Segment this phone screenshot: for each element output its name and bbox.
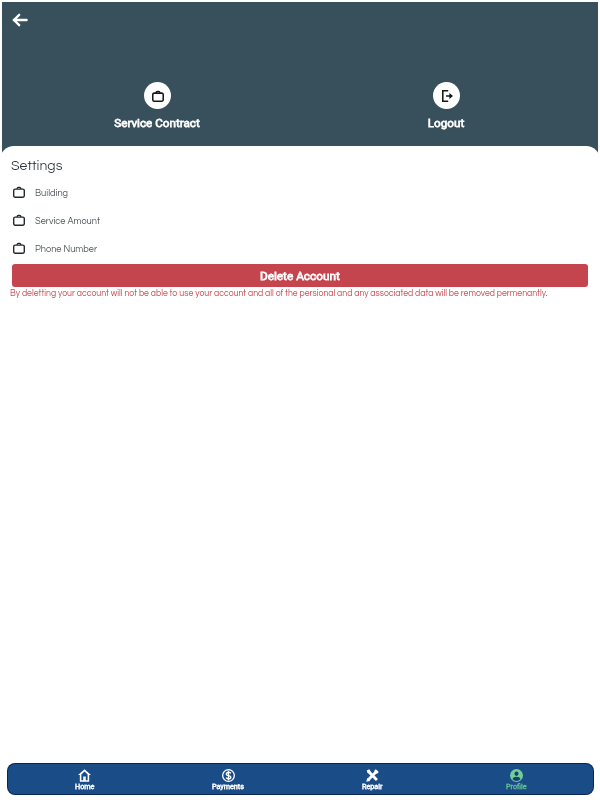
button[interactable]: Logout xyxy=(386,82,506,130)
button[interactable]: Profile xyxy=(444,764,588,794)
staticText: Building xyxy=(35,188,69,197)
staticText: Logout xyxy=(386,116,506,130)
button[interactable]: Delete Account xyxy=(12,264,588,287)
button[interactable]: Payments xyxy=(156,764,300,794)
staticText: Home xyxy=(75,782,95,790)
staticText: By deletting your account will not be ab… xyxy=(10,289,548,298)
button[interactable]: Home xyxy=(13,764,156,794)
button[interactable]: Service Amount xyxy=(0,206,600,234)
button[interactable]: Building xyxy=(0,178,600,206)
staticText: Payments xyxy=(212,782,244,790)
staticText: Delete Account xyxy=(260,269,340,283)
button[interactable]: Service Contract xyxy=(97,82,217,130)
staticText: Settings xyxy=(11,159,63,173)
button[interactable]: Repair xyxy=(300,764,444,794)
staticText: Repair xyxy=(362,782,383,790)
button[interactable]: Phone Number xyxy=(0,234,600,262)
staticText: Phone Number xyxy=(35,244,98,253)
button[interactable]: Back xyxy=(8,8,32,32)
staticText: Service Contract xyxy=(97,116,217,130)
staticText: Service Amount xyxy=(35,216,100,225)
staticText: Profile xyxy=(506,782,527,790)
